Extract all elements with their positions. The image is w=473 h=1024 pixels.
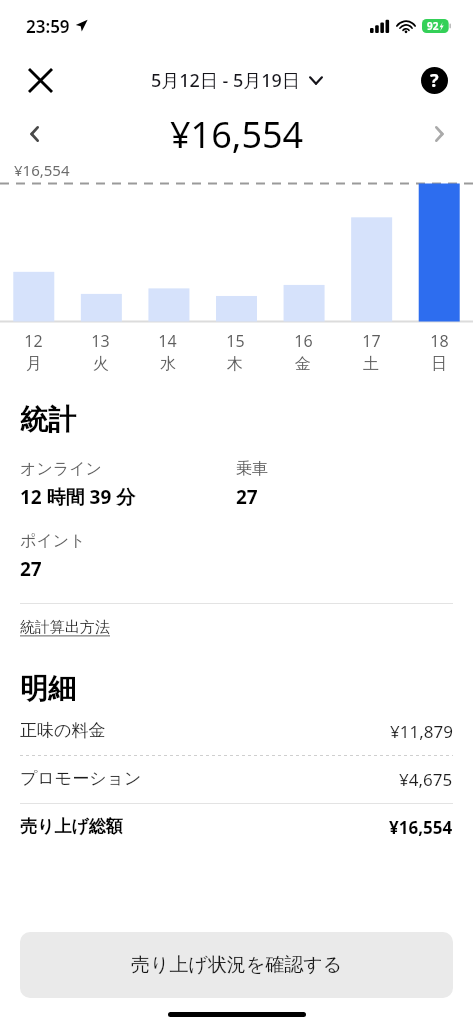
staticText: 23:59 — [26, 15, 70, 38]
staticText: 16 — [294, 330, 313, 352]
staticText: 金 — [295, 354, 311, 374]
staticText: 12 — [24, 330, 43, 352]
staticText: ポイント — [20, 531, 86, 551]
staticText: 水 — [160, 354, 176, 374]
staticText: 明細 — [20, 671, 76, 706]
staticText: オンライン — [20, 459, 102, 479]
staticText: 18 — [430, 330, 449, 352]
staticText: ? — [430, 68, 439, 93]
staticText: ¥11,879 — [390, 720, 453, 743]
staticText: ¥16,554 — [389, 816, 453, 839]
button[interactable]: 売り上げ状況を確認する — [20, 932, 453, 998]
staticText: ¥16,554 — [170, 110, 304, 159]
staticText: 乗車 — [236, 459, 268, 479]
staticText: ¥4,675 — [399, 768, 453, 791]
staticText: 火 — [93, 354, 109, 374]
staticText: 日 — [431, 354, 447, 374]
staticText: 統計 — [20, 402, 76, 437]
button[interactable]: Help — [413, 59, 455, 101]
staticText: 14 — [158, 330, 177, 352]
staticText: 売り上げ状況を確認する — [131, 953, 343, 977]
staticText: 正味の料金 — [20, 720, 106, 741]
button[interactable]: 統計算出方法 — [20, 618, 110, 637]
staticText: 92 — [427, 19, 439, 33]
staticText: プロモーション — [20, 768, 142, 789]
staticText: 月 — [26, 354, 42, 374]
staticText: 12 時間 39 分 — [20, 484, 136, 510]
staticText: ¥16,554 — [14, 160, 70, 180]
staticText: 17 — [362, 330, 381, 352]
staticText: 木 — [227, 354, 243, 374]
staticText: 5月12日 - 5月19日 — [151, 68, 300, 93]
button[interactable]: 5月12日 - 5月19日 — [151, 68, 323, 93]
staticText: 統計算出方法 — [20, 618, 110, 637]
button[interactable]: Next week — [419, 114, 459, 154]
staticText: 27 — [20, 556, 42, 582]
button[interactable]: Previous week — [14, 114, 54, 154]
button[interactable]: Close — [18, 58, 62, 102]
staticText: 売り上げ総額 — [20, 816, 123, 837]
staticText: 13 — [91, 330, 110, 352]
staticText: 27 — [236, 484, 258, 510]
staticText: 土 — [363, 354, 379, 374]
staticText: 15 — [226, 330, 245, 352]
